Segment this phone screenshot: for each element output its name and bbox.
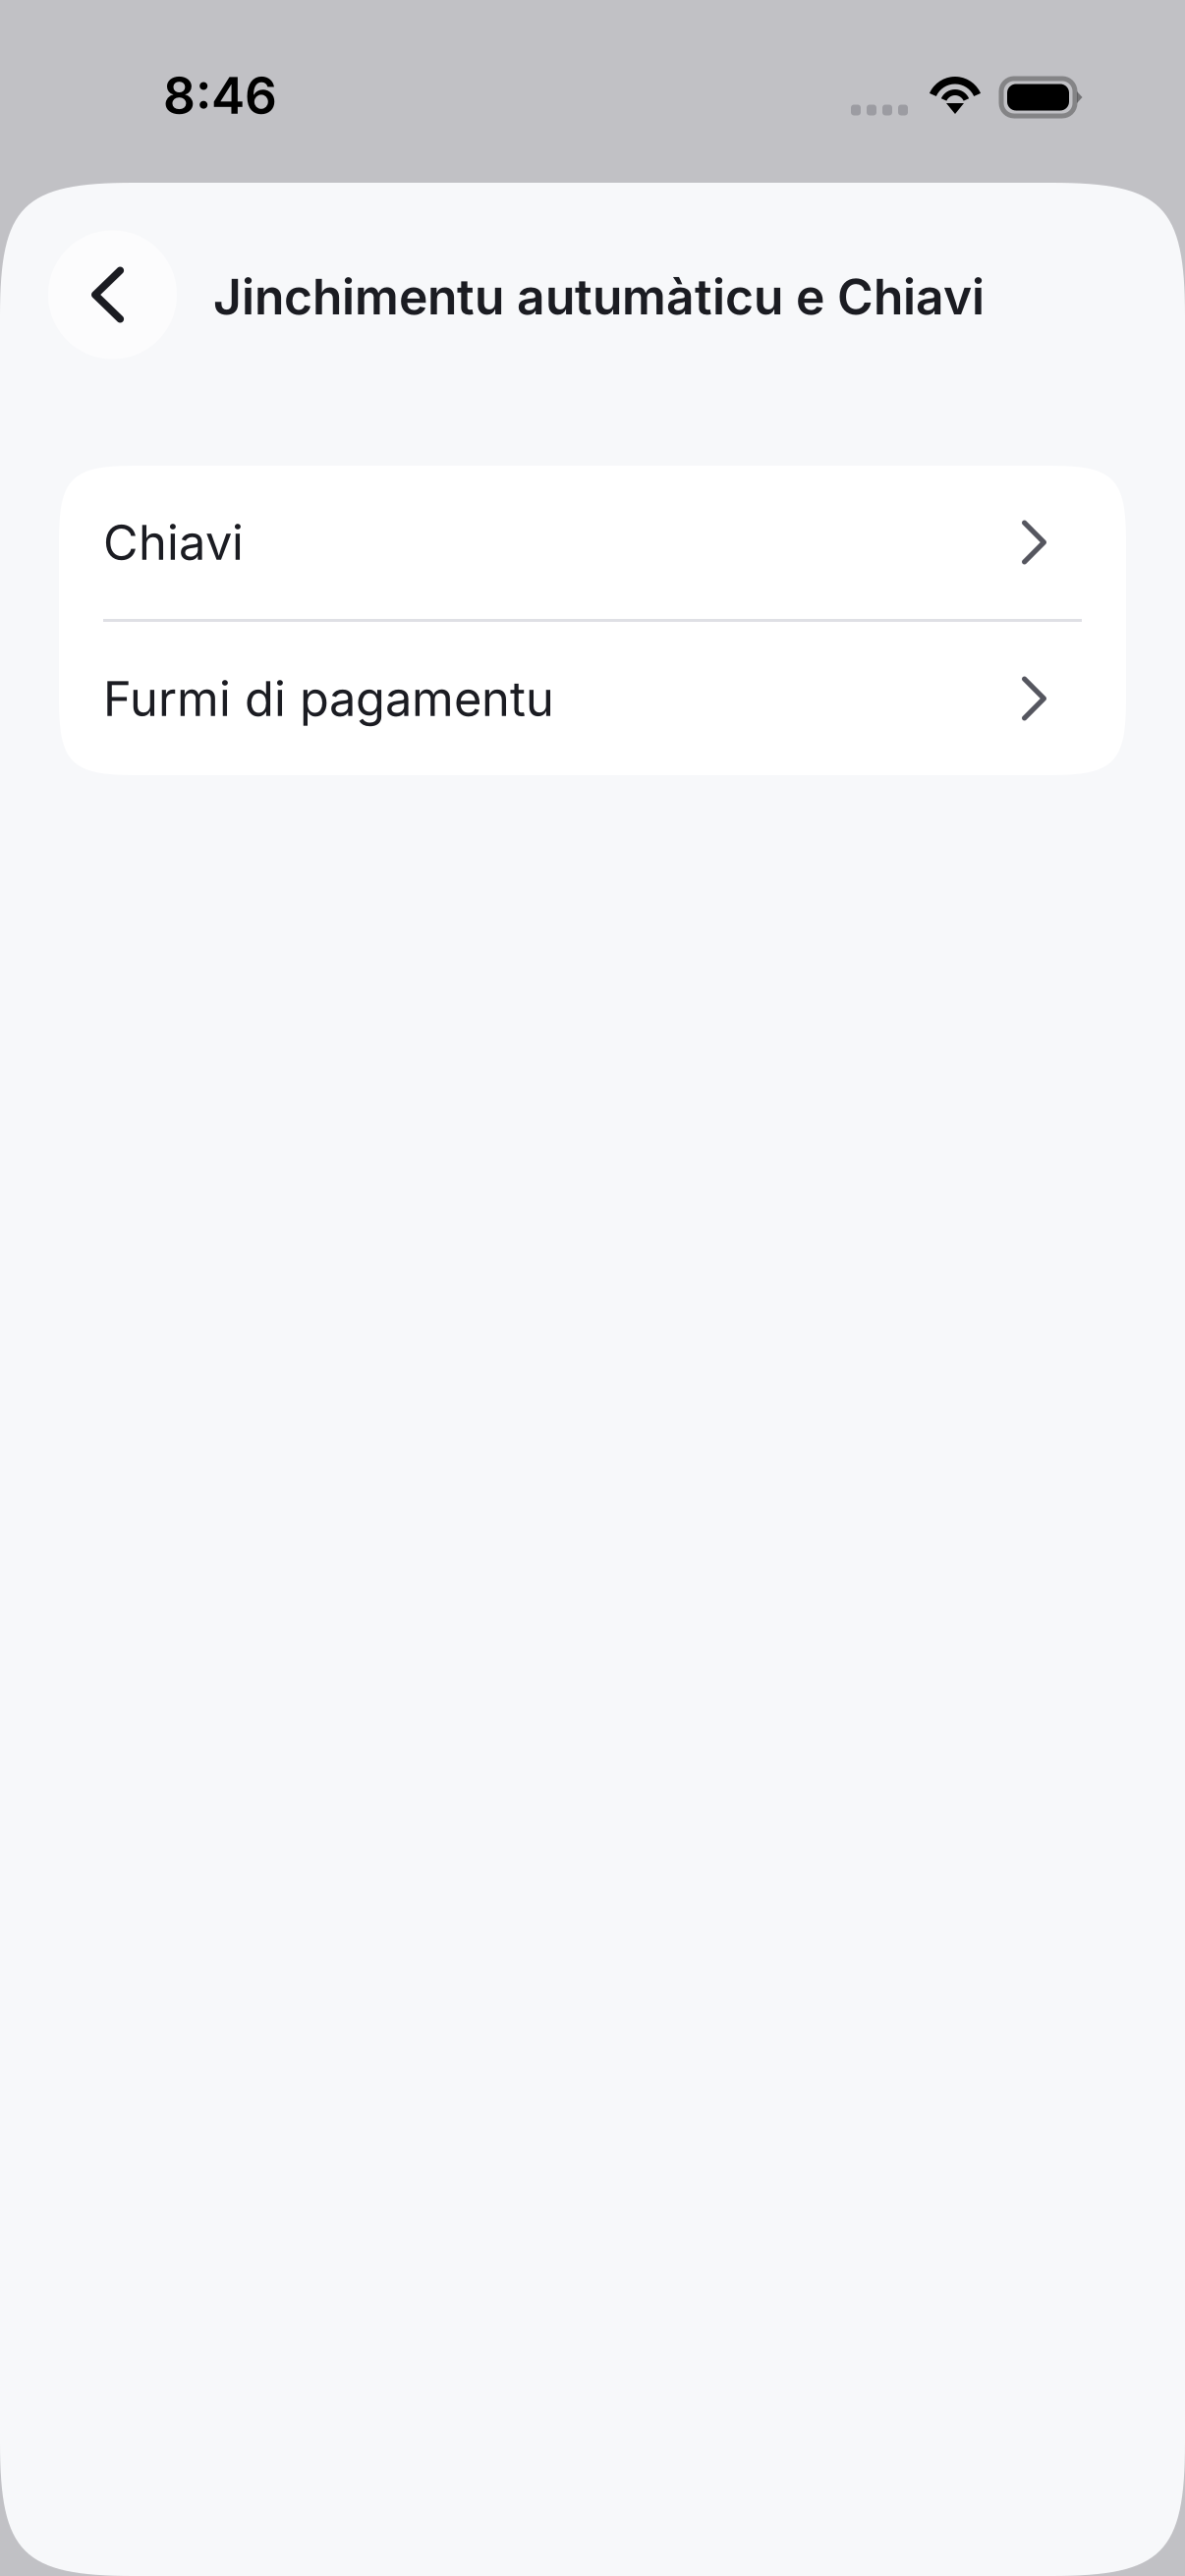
button[interactable]: Chiavi bbox=[59, 466, 1126, 619]
staticText: Chiavi bbox=[103, 514, 244, 571]
staticText: Furmi di pagamentu bbox=[103, 670, 554, 727]
staticText: Jinchimentu autumàticu e Chiavi bbox=[213, 268, 985, 326]
staticText: 8:46 bbox=[163, 66, 277, 125]
button[interactable]: Back bbox=[48, 230, 177, 359]
button[interactable]: Furmi di pagamentu bbox=[59, 622, 1126, 775]
